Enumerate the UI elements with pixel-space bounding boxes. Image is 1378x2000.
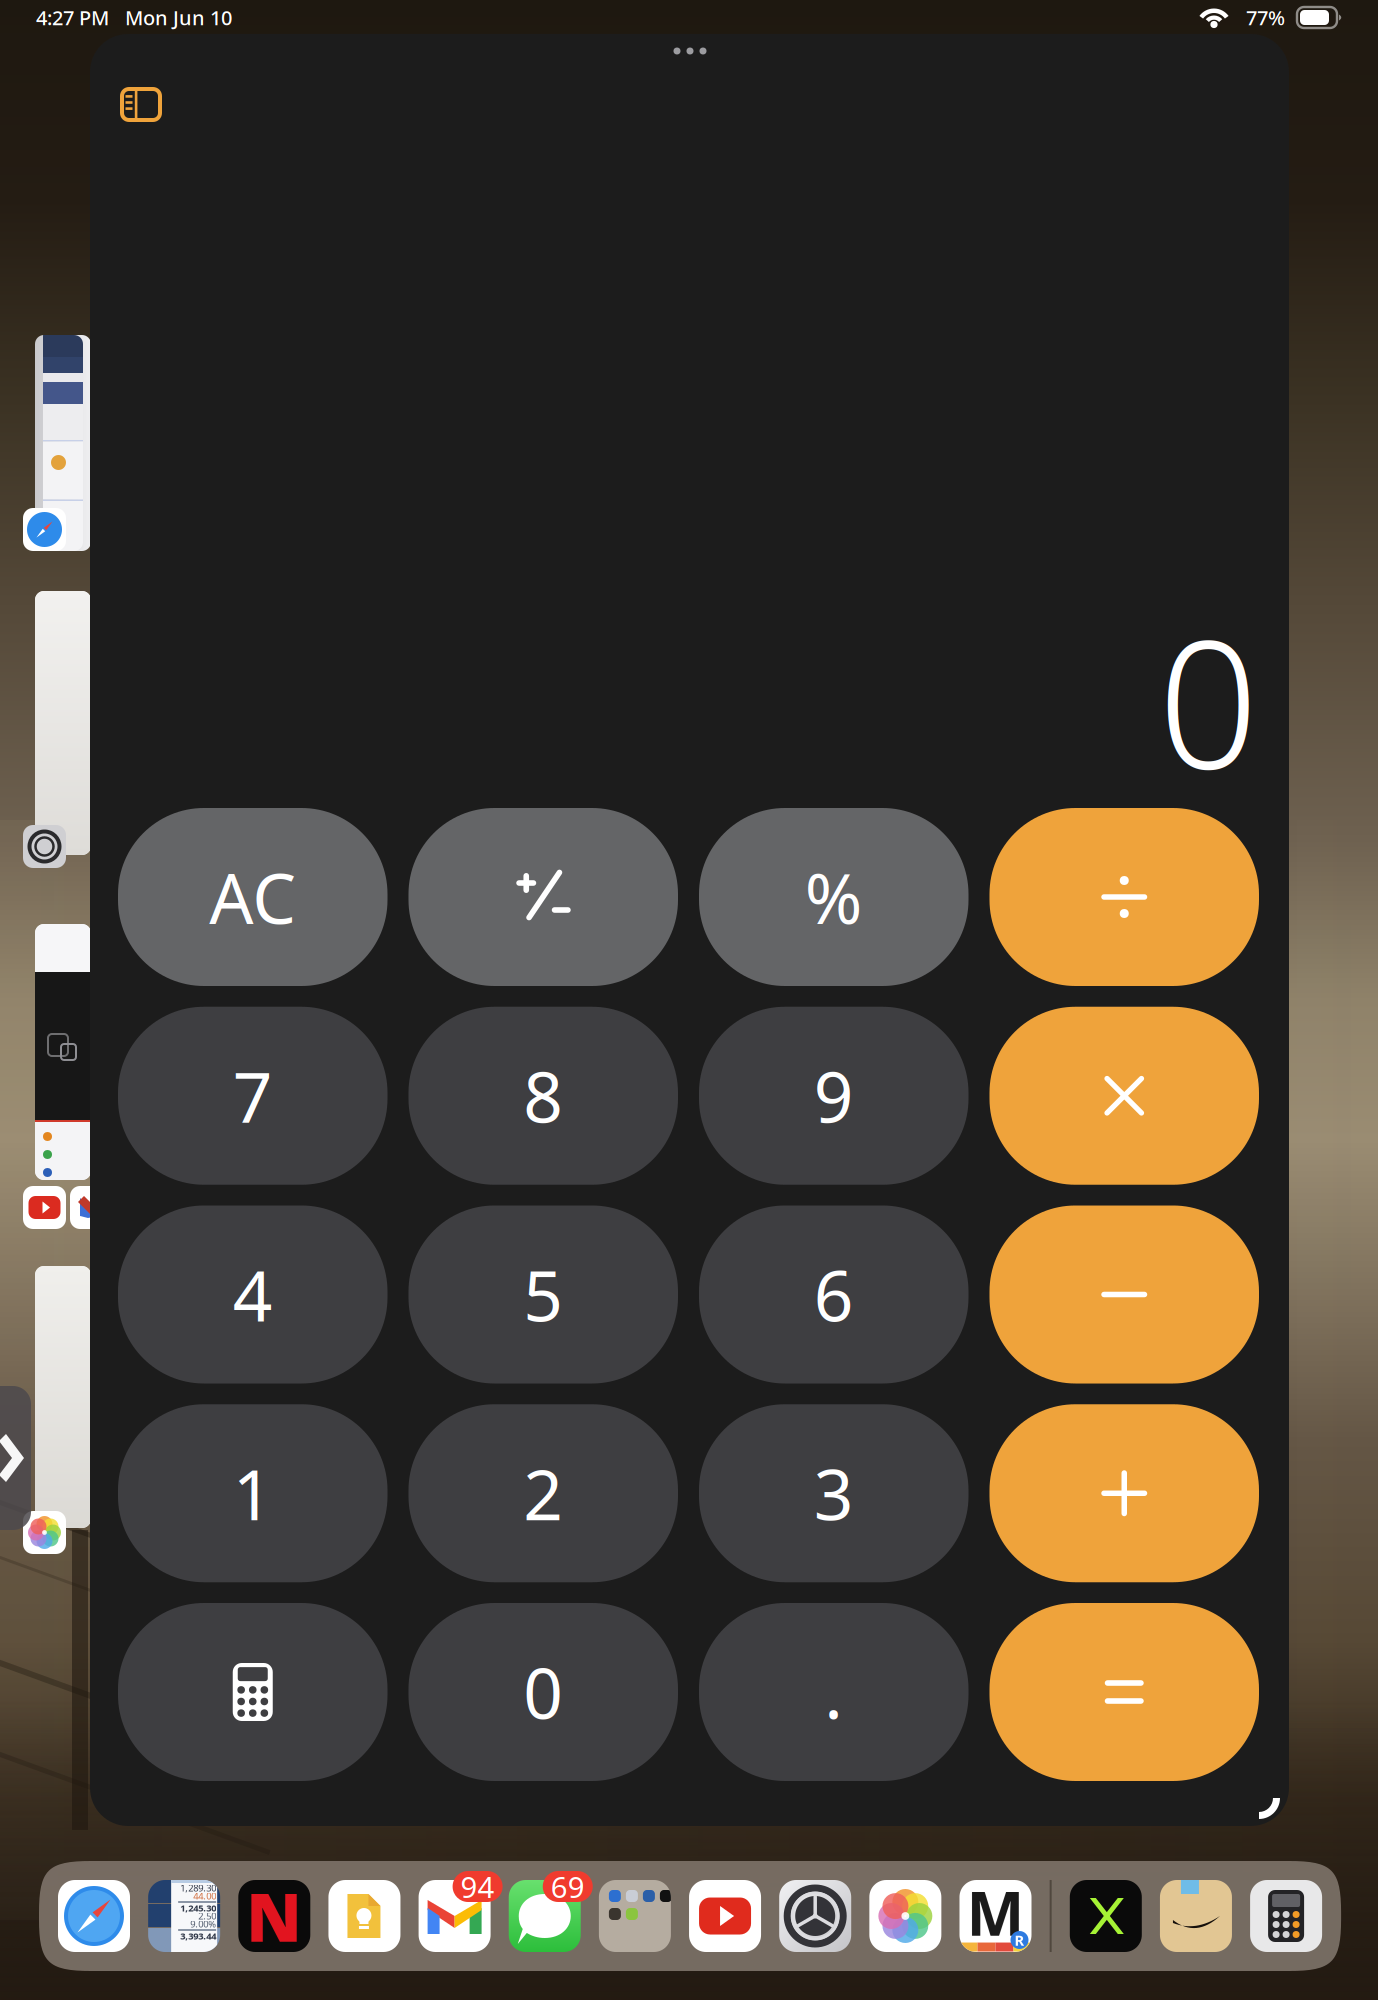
button[interactable]: Netflix — [238, 1880, 310, 1952]
staticText: 44.00 — [193, 1890, 216, 1902]
button[interactable]: Messages — [509, 1880, 581, 1952]
button[interactable]: YouTube — [23, 1186, 66, 1229]
staticText: 4:27 PM — [36, 4, 109, 31]
button[interactable]: . — [699, 1603, 968, 1781]
button[interactable]: Folder — [599, 1880, 671, 1952]
button[interactable]: Google Keep — [328, 1880, 400, 1952]
button[interactable]: Gmail — [70, 1186, 113, 1229]
staticText: 9.00% — [190, 1918, 216, 1930]
button[interactable]: Divide — [989, 808, 1259, 986]
staticText: 9 — [814, 1050, 854, 1142]
button[interactable]: AC — [118, 808, 387, 986]
button[interactable]: Equals — [989, 1603, 1259, 1781]
button[interactable]: Safari — [58, 1880, 130, 1952]
staticText: 2 — [523, 1447, 563, 1539]
staticText: 6 — [814, 1248, 854, 1341]
button[interactable]: Photos — [23, 1511, 66, 1554]
staticText: 5 — [523, 1248, 563, 1341]
button[interactable]: 0 — [408, 1603, 678, 1781]
button[interactable]: Calcbot — [148, 1880, 220, 1952]
staticText: 8 — [523, 1050, 563, 1142]
staticText: 4 — [233, 1248, 273, 1341]
button[interactable]: 9 — [699, 1007, 968, 1185]
staticText: 77% — [1246, 4, 1285, 31]
button[interactable]: X — [1070, 1880, 1142, 1952]
button[interactable]: Calculator — [1250, 1880, 1322, 1952]
button[interactable]: 2 — [408, 1404, 678, 1582]
staticText: 3,393.44 — [180, 1930, 216, 1942]
staticText: 1 — [233, 1447, 273, 1539]
staticText: AC — [209, 851, 296, 943]
button[interactable]: 8 — [408, 1007, 678, 1185]
button[interactable]: Multiply — [989, 1007, 1259, 1185]
button[interactable]: Show history sidebar — [108, 75, 174, 134]
button[interactable]: Safari — [23, 508, 66, 551]
staticText: 1,245.30 — [180, 1902, 216, 1914]
staticText: 3 — [814, 1447, 854, 1539]
staticText: 0 — [523, 1646, 563, 1738]
button[interactable]: Amazon — [1160, 1880, 1232, 1952]
button[interactable]: Gmail — [419, 1880, 491, 1952]
button[interactable]: YouTube — [689, 1880, 761, 1952]
staticText: R — [1014, 1930, 1024, 1950]
button[interactable]: Minus — [989, 1205, 1259, 1383]
staticText: 1,289.30 — [180, 1882, 216, 1894]
staticText: Mon Jun 10 — [125, 4, 232, 31]
button[interactable]: 5 — [408, 1205, 678, 1383]
staticText: 2.50 — [198, 1910, 216, 1922]
staticText: 7 — [233, 1050, 273, 1142]
button[interactable]: Plus — [989, 1404, 1259, 1582]
button[interactable]: Plus minus — [408, 808, 678, 986]
button[interactable]: % — [699, 808, 968, 986]
staticText: 69 — [551, 1867, 585, 1906]
button[interactable]: 3 — [699, 1404, 968, 1582]
button[interactable]: Show app switcher — [0, 1386, 31, 1530]
button[interactable]: Photos — [869, 1880, 941, 1952]
button[interactable]: Settings — [23, 825, 66, 868]
button[interactable]: Medium — [959, 1880, 1031, 1952]
button[interactable]: 7 — [118, 1007, 387, 1185]
staticText: % — [805, 851, 863, 943]
button[interactable]: 4 — [118, 1205, 387, 1383]
staticText: 0 — [1158, 583, 1258, 817]
staticText: N — [246, 1872, 302, 1960]
button[interactable]: Settings — [779, 1880, 851, 1952]
staticText: M — [966, 1871, 1024, 1953]
staticText: . — [824, 1646, 843, 1738]
button[interactable]: 6 — [699, 1205, 968, 1383]
staticText: 94 — [461, 1867, 495, 1906]
button[interactable]: 1 — [118, 1404, 387, 1582]
button[interactable]: Calculator — [118, 1603, 387, 1781]
